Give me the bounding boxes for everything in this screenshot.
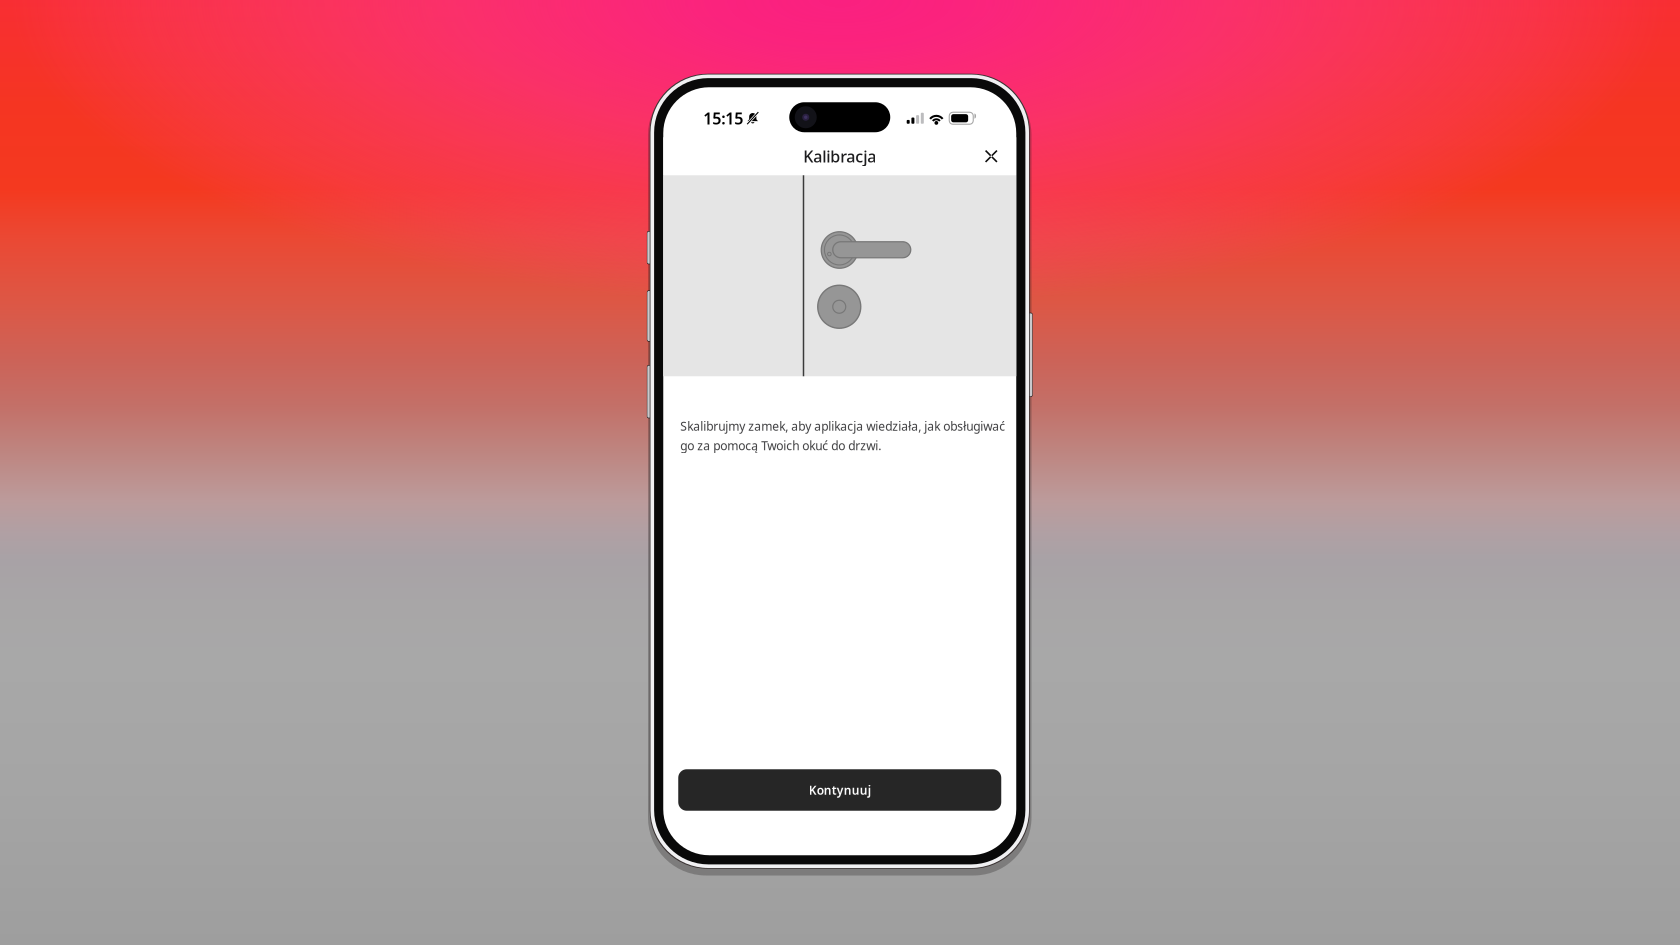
button[interactable]: Kontynuuj <box>678 769 1001 811</box>
staticText: Kontynuuj <box>809 782 871 798</box>
button[interactable]: Zamknij <box>971 137 1011 175</box>
staticText: Skalibrujmy zamek, aby aplikacja wiedzia… <box>680 418 1005 434</box>
staticText: Kalibracja <box>803 146 876 167</box>
staticText: go za pomocą Twoich okuć do drzwi. <box>680 438 881 454</box>
staticText: 15:15 <box>703 108 743 129</box>
